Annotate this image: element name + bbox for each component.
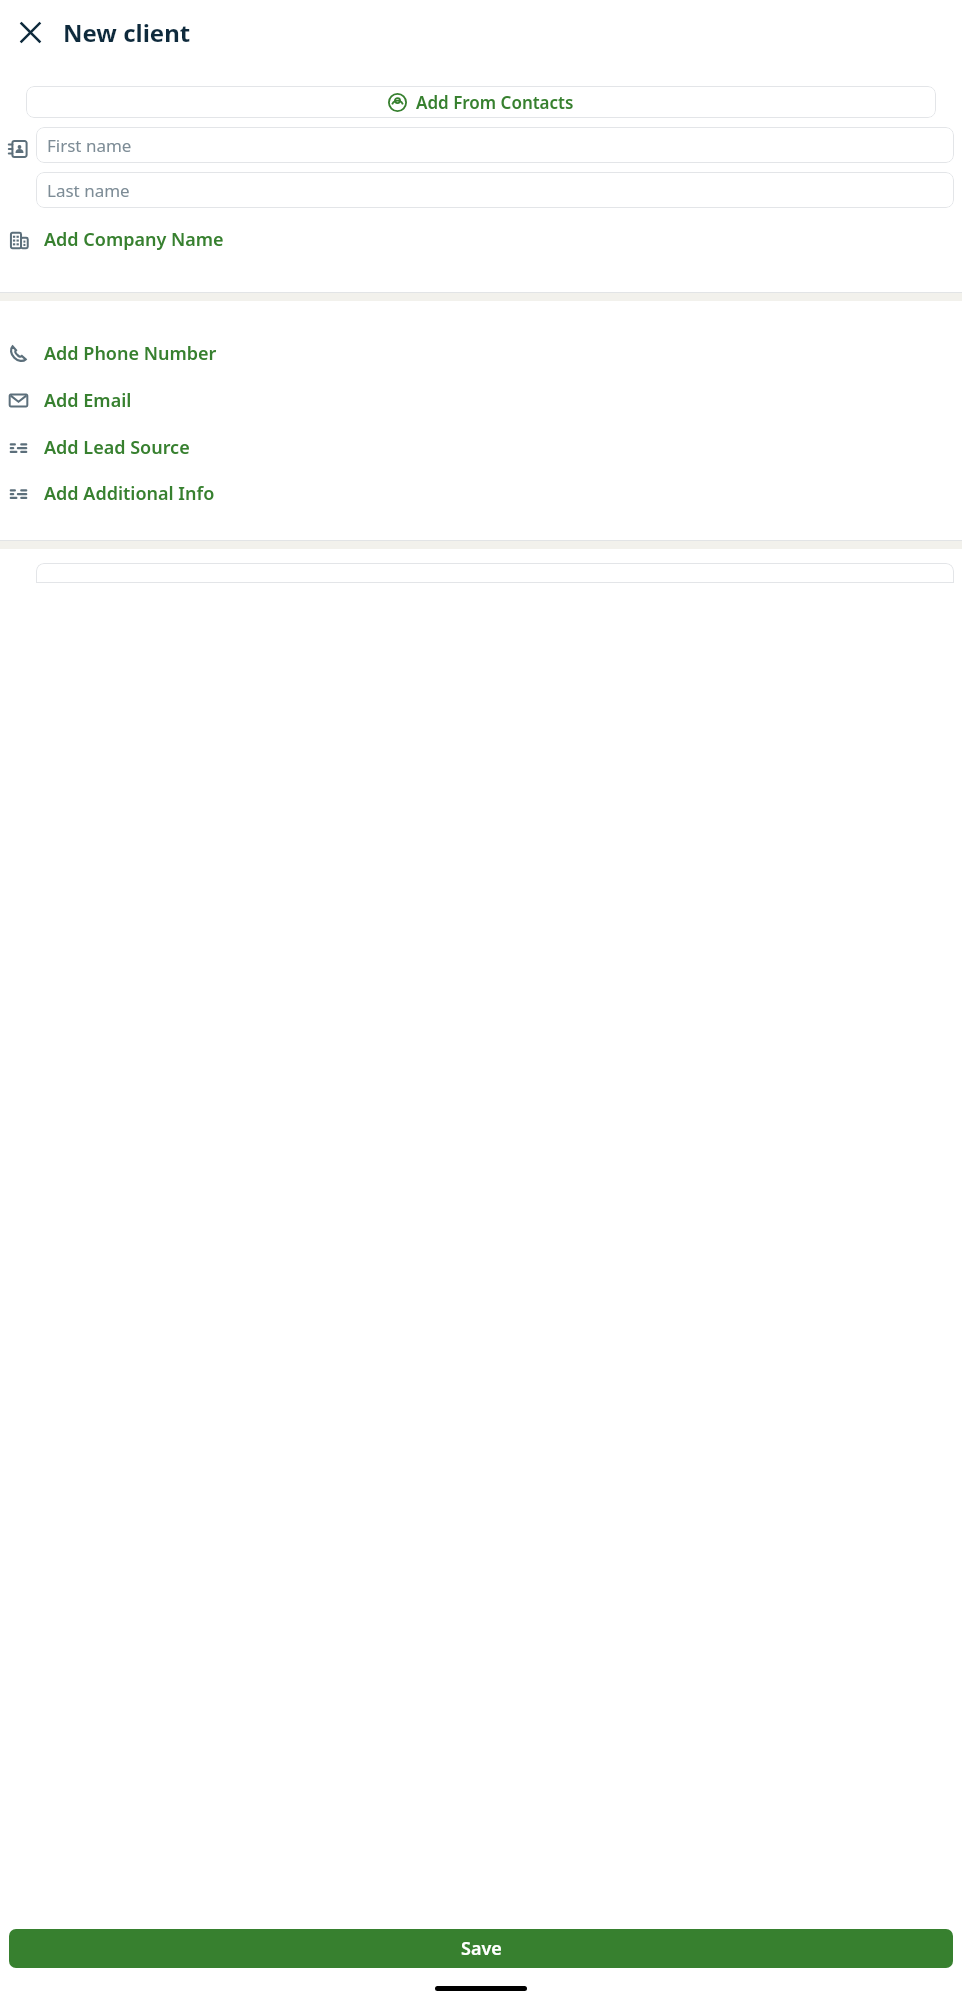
staticText: Save [461,1936,502,1961]
button[interactable]: Save [9,1929,953,1968]
staticText: Add Email [44,388,132,413]
staticText: First name [47,134,132,157]
staticText: Last name [47,179,130,202]
button[interactable]: Add From Contacts [26,86,936,118]
button[interactable]: First name [36,127,954,163]
button[interactable]: Add Company Name [0,208,962,270]
staticText: Add Company Name [44,227,224,252]
staticText: New client [63,16,191,49]
button[interactable]: Last name [36,172,954,208]
button[interactable]: Add Additional Info [0,470,962,516]
button[interactable]: Add Email [0,377,962,424]
button[interactable]: Add Phone Number [0,330,962,377]
staticText: Add Lead Source [44,435,190,460]
staticText: Add From Contacts [416,91,574,114]
button[interactable]: Close [6,8,54,56]
staticText: Add Phone Number [44,341,217,366]
button[interactable]: Add Lead Source [0,424,962,470]
staticText: Add Additional Info [44,481,215,506]
